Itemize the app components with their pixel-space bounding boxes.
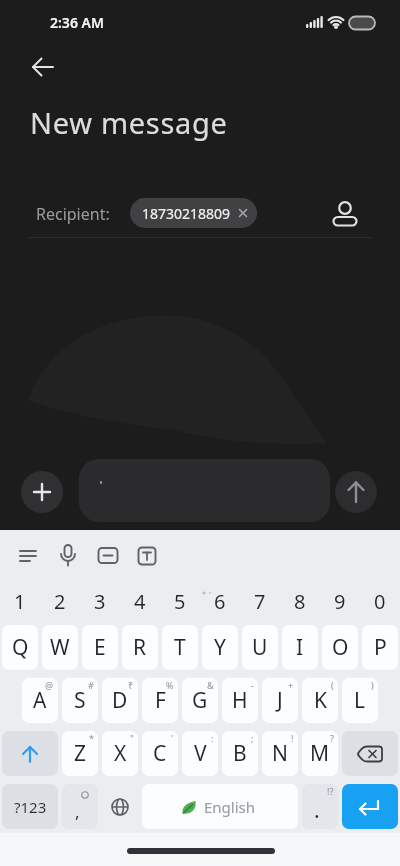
staticText: 4 — [134, 588, 146, 615]
staticText: + — [288, 679, 294, 691]
button[interactable]: ?123 — [2, 784, 58, 829]
staticText: M — [310, 739, 330, 768]
staticText: . — [314, 796, 320, 825]
staticText: N — [272, 739, 288, 768]
button[interactable]: 5 — [160, 578, 200, 624]
staticText: " — [130, 732, 134, 744]
staticText: New message — [30, 103, 228, 142]
staticText: F — [155, 686, 166, 715]
button[interactable]: 8 — [280, 578, 320, 624]
button[interactable]: Y — [202, 625, 238, 670]
staticText: K — [314, 686, 327, 715]
button[interactable]: 9 — [320, 578, 360, 624]
staticText: # — [88, 679, 94, 691]
button[interactable] — [12, 540, 44, 572]
button[interactable] — [79, 459, 330, 522]
button[interactable]: M — [302, 731, 338, 776]
staticText: E — [94, 633, 106, 662]
staticText: @ — [45, 679, 54, 691]
staticText: Z — [74, 739, 87, 768]
button[interactable] — [92, 540, 124, 572]
button[interactable]: O — [322, 625, 358, 670]
button[interactable]: R — [122, 625, 158, 670]
button[interactable]: G — [182, 678, 218, 723]
button[interactable]: N — [262, 731, 298, 776]
staticText: & — [207, 679, 214, 691]
staticText: Q — [12, 633, 29, 662]
staticText: ( — [331, 679, 334, 691]
button[interactable]: 1 — [0, 578, 40, 624]
button[interactable]: J — [262, 678, 298, 723]
staticText: Recipient: — [36, 203, 110, 225]
button[interactable] — [342, 784, 398, 829]
button[interactable]: F — [142, 678, 178, 723]
staticText: A — [33, 686, 47, 715]
staticText: L — [354, 686, 366, 715]
button[interactable] — [52, 540, 84, 572]
staticText: B — [233, 739, 247, 768]
button[interactable]: !? — [302, 784, 338, 829]
staticText: P — [374, 633, 387, 662]
button[interactable] — [24, 54, 60, 82]
button[interactable]: S — [62, 678, 98, 723]
button[interactable] — [102, 784, 138, 829]
button[interactable]: I — [282, 625, 318, 670]
staticText: D — [112, 686, 128, 715]
button[interactable]: 7 — [240, 578, 280, 624]
staticText: 18730218809 — [142, 204, 231, 223]
staticText: , — [75, 800, 80, 823]
button[interactable]: English — [142, 784, 298, 829]
button[interactable]: , — [62, 784, 98, 829]
staticText: ? — [330, 732, 334, 744]
button[interactable]: D — [102, 678, 138, 723]
button[interactable] — [342, 731, 398, 776]
button[interactable]: A — [22, 678, 58, 723]
button[interactable]: X — [102, 731, 138, 776]
staticText: !? — [327, 785, 334, 797]
button[interactable]: Q — [2, 625, 38, 670]
button[interactable]: 0 — [360, 578, 400, 624]
staticText: R — [133, 633, 147, 662]
staticText: T — [174, 633, 186, 662]
button[interactable]: B — [222, 731, 258, 776]
button[interactable]: K — [302, 678, 338, 723]
button[interactable]: T — [162, 625, 198, 670]
staticText: S — [74, 686, 86, 715]
staticText: 3 — [94, 588, 106, 615]
staticText: 5 — [174, 588, 186, 615]
button[interactable]: 18730218809 — [130, 198, 257, 228]
button[interactable]: Z — [62, 731, 98, 776]
button[interactable] — [330, 196, 360, 232]
staticText: Y — [214, 633, 226, 662]
button[interactable] — [335, 471, 377, 513]
button[interactable] — [21, 471, 63, 513]
button[interactable] — [2, 731, 58, 776]
staticText: 1 — [14, 588, 26, 615]
button[interactable]: 6 — [200, 578, 240, 624]
button[interactable]: C — [142, 731, 178, 776]
button[interactable]: 3 — [80, 578, 120, 624]
button[interactable]: 2 — [40, 578, 80, 624]
button[interactable]: P — [362, 625, 398, 670]
button[interactable]: H — [222, 678, 258, 723]
staticText: 6 — [214, 588, 226, 615]
staticText: % — [166, 679, 174, 691]
staticText: O — [332, 633, 349, 662]
staticText: J — [277, 686, 283, 715]
button[interactable]: V — [182, 731, 218, 776]
staticText: I — [296, 633, 304, 662]
staticText: ' — [171, 732, 174, 744]
staticText: : — [211, 732, 214, 744]
button[interactable]: E — [82, 625, 118, 670]
staticText: 2 — [54, 588, 66, 615]
button[interactable] — [131, 540, 163, 572]
staticText: 9 — [334, 588, 346, 615]
button[interactable]: L — [342, 678, 378, 723]
staticText: 8 — [294, 588, 306, 615]
staticText: X — [114, 739, 127, 768]
button[interactable]: W — [42, 625, 78, 670]
button[interactable]: U — [242, 625, 278, 670]
staticText: ₹ — [128, 679, 134, 691]
button[interactable]: 4 — [120, 578, 160, 624]
staticText: - — [251, 679, 254, 691]
